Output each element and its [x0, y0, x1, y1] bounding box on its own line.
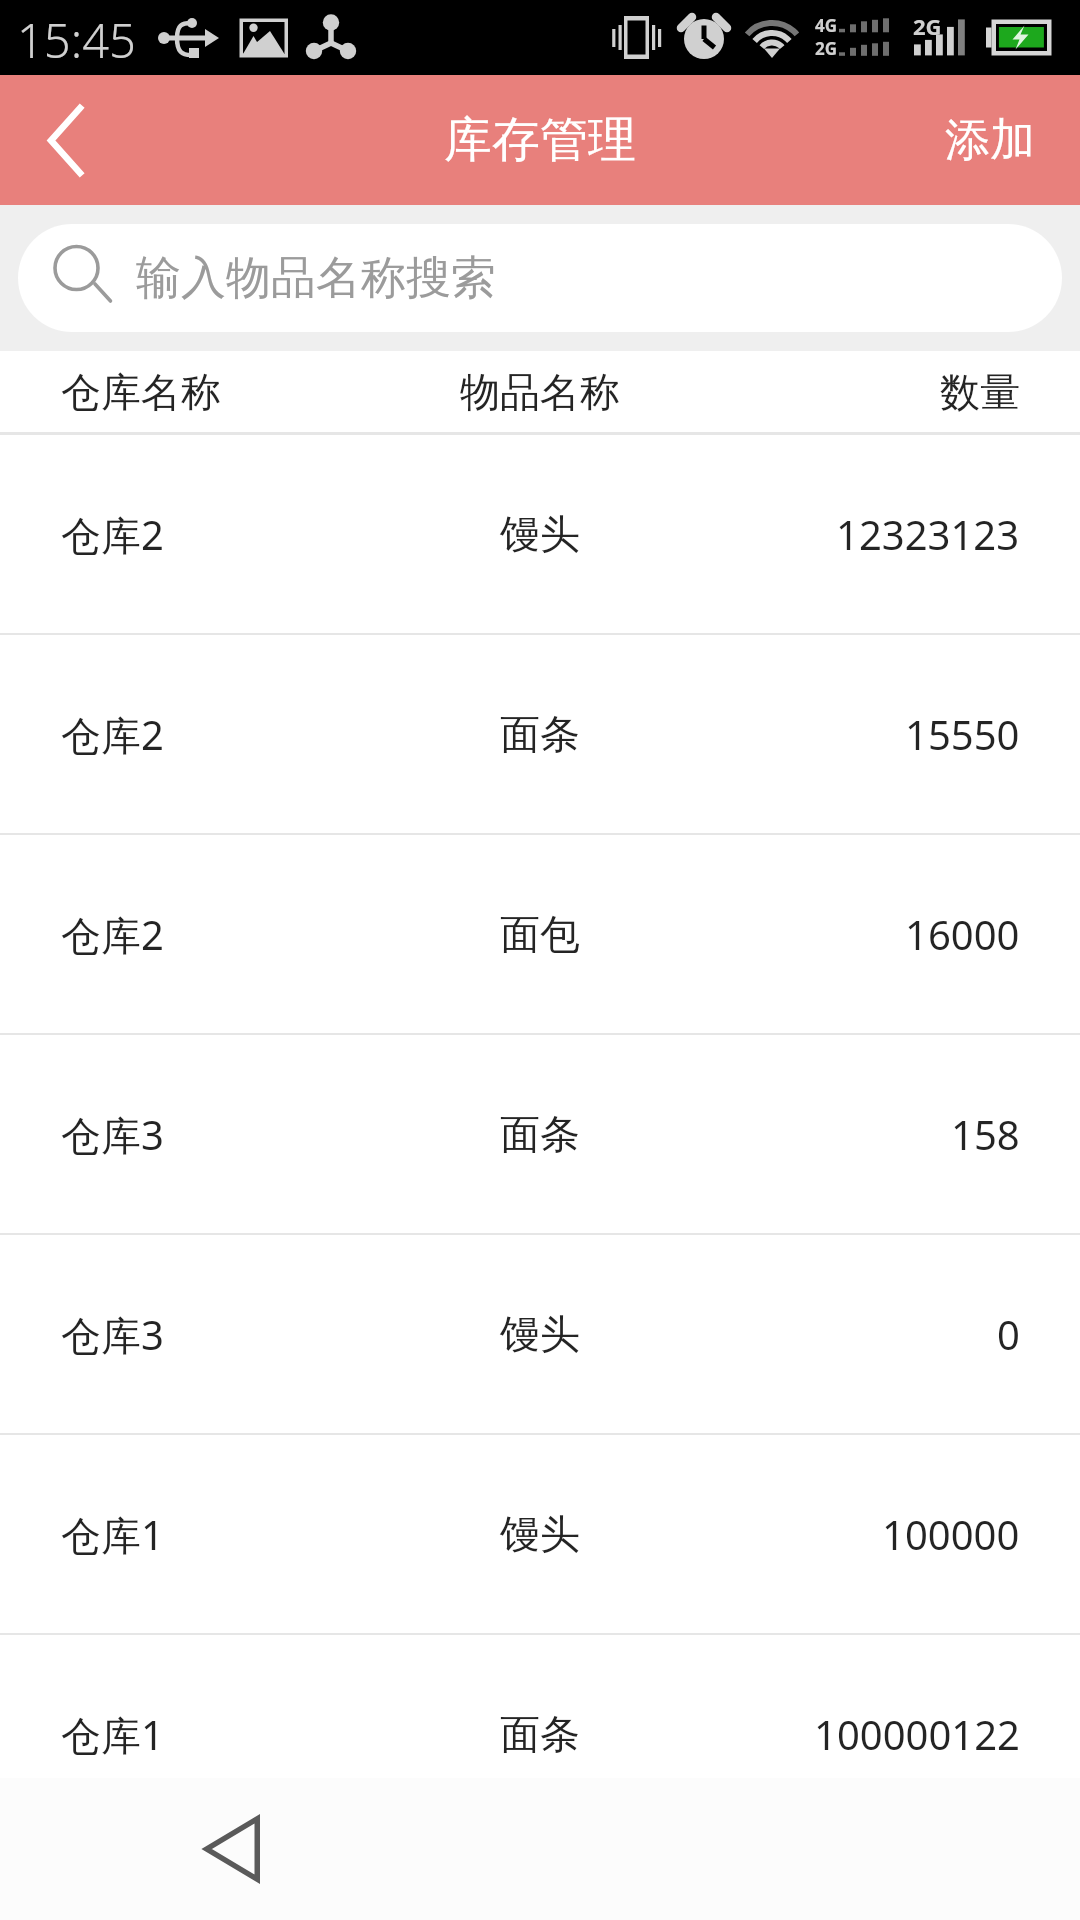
staticText: 4G: [815, 14, 838, 37]
staticText: 馒头: [500, 509, 580, 559]
staticText: 2G: [913, 11, 942, 41]
staticText: 2G: [815, 37, 838, 60]
button[interactable]: 仓库2: [0, 835, 1080, 1033]
button[interactable]: 仓库2: [0, 435, 1080, 633]
button[interactable]: 仓库1: [0, 1435, 1080, 1633]
staticText: 158: [951, 1107, 1020, 1161]
button[interactable]: 添加: [905, 75, 1080, 205]
staticText: 仓库1: [61, 1707, 164, 1762]
staticText: 仓库2: [61, 907, 164, 962]
staticText: 仓库1: [61, 1507, 164, 1562]
staticText: 面条: [500, 709, 580, 759]
button[interactable]: 仓库3: [0, 1235, 1080, 1433]
staticText: 添加: [945, 112, 1035, 169]
button[interactable]: 仓库3: [0, 1035, 1080, 1233]
staticText: 100000: [882, 1507, 1020, 1561]
staticText: 馒头: [500, 1509, 580, 1559]
staticText: 库存管理: [444, 110, 636, 170]
staticText: 0: [997, 1307, 1020, 1361]
staticText: 仓库2: [61, 507, 164, 562]
button[interactable]: 输入物品名称搜索: [18, 224, 1062, 332]
staticText: 12323123: [836, 507, 1020, 561]
staticText: 输入物品名称搜索: [136, 250, 496, 307]
staticText: 16000: [905, 907, 1020, 961]
button[interactable]: 仓库2: [0, 635, 1080, 833]
staticText: 馒头: [500, 1309, 580, 1359]
staticText: 仓库3: [61, 1107, 164, 1162]
staticText: 100000122: [814, 1707, 1020, 1761]
staticText: 仓库名称: [61, 367, 221, 417]
staticText: 物品名称: [460, 367, 620, 417]
button[interactable]: Back: [177, 1794, 287, 1904]
staticText: 仓库2: [61, 707, 164, 762]
button[interactable]: Back: [0, 75, 140, 205]
staticText: 面条: [500, 1709, 580, 1759]
staticText: 面包: [500, 909, 580, 959]
staticText: 面条: [500, 1109, 580, 1159]
staticText: 仓库3: [61, 1307, 164, 1362]
staticText: 15:45: [17, 8, 136, 72]
button[interactable]: 仓库1: [0, 1635, 1080, 1778]
staticText: 15550: [905, 707, 1020, 761]
staticText: 数量: [940, 367, 1020, 417]
